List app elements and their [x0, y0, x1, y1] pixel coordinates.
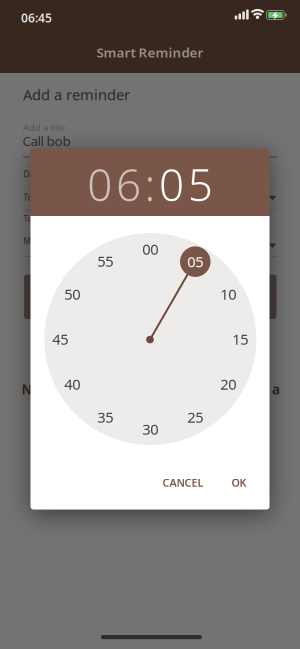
- button[interactable]: 05: [180, 246, 211, 277]
- staticText: CANCEL: [162, 475, 203, 490]
- staticText: 50: [64, 284, 80, 304]
- staticText: 0: [159, 155, 184, 213]
- staticText: 20: [220, 374, 236, 394]
- staticText: 40: [64, 374, 80, 394]
- staticText: 00: [142, 239, 158, 259]
- staticText: Date: [23, 169, 41, 179]
- button[interactable]: 10: [220, 284, 236, 304]
- staticText: 30: [142, 419, 158, 439]
- staticText: a: [272, 380, 280, 398]
- staticText: 15: [232, 329, 248, 349]
- staticText: OK: [231, 475, 246, 490]
- staticText: Time: [23, 214, 41, 224]
- staticText: N: [21, 380, 32, 398]
- staticText: 25: [187, 407, 203, 427]
- button[interactable]: 25: [187, 407, 203, 427]
- button[interactable]: 15: [232, 329, 248, 349]
- staticText: Add a reminder: [23, 85, 130, 104]
- staticText: 05: [187, 252, 203, 271]
- staticText: Today: [23, 192, 45, 203]
- staticText: Call bob: [22, 132, 70, 150]
- button[interactable]: 20: [220, 374, 236, 394]
- staticText: 55: [97, 251, 113, 271]
- button[interactable]: OK: [223, 467, 254, 498]
- button[interactable]: 45: [52, 329, 68, 349]
- staticText: 35: [97, 407, 113, 427]
- staticText: 06:45: [21, 10, 52, 26]
- staticText: 0: [87, 155, 112, 213]
- staticText: Add a title: [23, 121, 65, 133]
- staticText: 5: [188, 155, 213, 213]
- button[interactable]: 40: [64, 374, 80, 394]
- button[interactable]: 30: [142, 419, 158, 439]
- staticText: 6: [116, 155, 141, 213]
- staticText: 10: [220, 284, 236, 304]
- staticText: 45: [52, 329, 68, 349]
- button[interactable]: 50: [64, 284, 80, 304]
- button[interactable]: 55: [97, 251, 113, 271]
- button[interactable]: CANCEL: [154, 467, 211, 498]
- button[interactable]: 00: [142, 239, 158, 259]
- staticText: :: [144, 155, 155, 213]
- staticText: Smart Reminder: [96, 43, 203, 61]
- staticText: Morning: [23, 235, 55, 246]
- button[interactable]: 35: [97, 407, 113, 427]
